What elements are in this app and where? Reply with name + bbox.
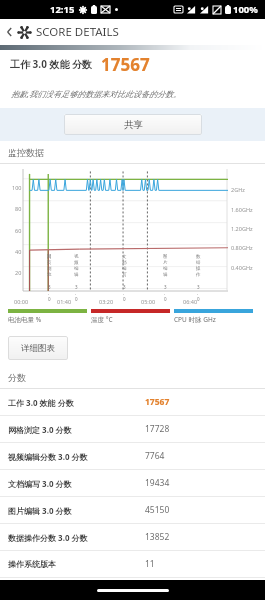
button[interactable]: 工作 3.0 效能 分数 bbox=[0, 389, 265, 416]
staticText: 温度 °C bbox=[91, 315, 113, 324]
staticText: 12:15 bbox=[50, 3, 75, 16]
staticText: 浏 bbox=[47, 266, 52, 272]
staticText: 3 bbox=[75, 284, 78, 290]
staticText: 03:20 bbox=[99, 298, 114, 305]
staticText: 电池电量 % bbox=[8, 315, 42, 324]
staticText: 视频编辑分数 3.0 分数 bbox=[8, 451, 88, 462]
staticText: . bbox=[75, 290, 77, 296]
staticText: 数据操作分数 3.0 分数 bbox=[8, 532, 88, 543]
staticText: 编 bbox=[74, 266, 79, 272]
staticText: 3 bbox=[164, 284, 167, 290]
staticText: 40 bbox=[15, 248, 22, 255]
staticText: 抱歉,我们没有足够的数据来对比此设备的分数。 bbox=[11, 88, 182, 99]
staticText: . bbox=[48, 290, 50, 296]
staticText: 3 bbox=[48, 284, 51, 290]
staticText: 100% bbox=[233, 3, 258, 16]
staticText bbox=[48, 278, 50, 284]
staticText: 数 bbox=[196, 254, 201, 260]
staticText: 0 bbox=[48, 296, 51, 302]
staticText: CPU 时脉 GHz bbox=[174, 315, 216, 324]
button[interactable]: 操作系统版本 bbox=[0, 551, 265, 578]
button[interactable]: Back bbox=[3, 25, 17, 39]
staticText: 编 bbox=[163, 266, 168, 272]
staticText: SCORE DETAILS bbox=[36, 24, 119, 40]
button[interactable]: Home bbox=[97, 589, 169, 592]
button[interactable]: 详细图表 bbox=[8, 336, 68, 360]
button[interactable]: 图片编辑 3.0 分数 bbox=[0, 497, 265, 524]
staticText: 图片编辑 3.0 分数 bbox=[8, 505, 72, 516]
staticText: 7764 bbox=[145, 450, 165, 462]
staticText: 0 bbox=[75, 296, 78, 302]
staticText: 0 bbox=[197, 296, 200, 302]
staticText: 编 bbox=[122, 266, 127, 272]
staticText: 1.60GHz bbox=[231, 206, 253, 213]
staticText: 页 bbox=[47, 260, 52, 266]
staticText: 网 bbox=[47, 254, 52, 260]
button[interactable]: 网格浏定 3.0 分数 bbox=[0, 416, 265, 443]
staticText: 06:40 bbox=[183, 298, 198, 305]
staticText: 13852 bbox=[145, 531, 170, 543]
staticText: 17728 bbox=[145, 423, 170, 435]
staticText: 片 bbox=[163, 260, 168, 266]
staticText: 辑 bbox=[163, 272, 168, 278]
staticText: 3 bbox=[197, 284, 200, 290]
staticText: 网格浏定 3.0 分数 bbox=[8, 424, 72, 435]
staticText: 1.20GHz bbox=[231, 225, 253, 232]
staticText: 据 bbox=[196, 260, 201, 266]
staticText: 操作系统版本 bbox=[8, 559, 56, 569]
staticText: 文档编写 3.0 分数 bbox=[8, 478, 72, 489]
staticText: 2GHz bbox=[231, 186, 245, 193]
staticText: 0.40GHz bbox=[231, 264, 253, 271]
staticText: 60 bbox=[15, 227, 22, 234]
staticText: 05:00 bbox=[141, 298, 156, 305]
staticText: . bbox=[164, 290, 166, 296]
staticText: 17567 bbox=[145, 396, 170, 408]
staticText: 作 bbox=[196, 272, 201, 278]
staticText: 0.80GHz bbox=[231, 244, 253, 251]
staticText: 45150 bbox=[145, 504, 170, 516]
button[interactable]: 文档编写 3.0 分数 bbox=[0, 470, 265, 497]
staticText: 20 bbox=[15, 269, 22, 276]
staticText: 17567 bbox=[101, 53, 150, 76]
staticText: 档 bbox=[122, 260, 127, 266]
staticText: 共享 bbox=[124, 119, 143, 131]
staticText: 0 bbox=[123, 296, 126, 302]
staticText: 分数 bbox=[8, 372, 26, 383]
staticText: . bbox=[123, 290, 125, 296]
staticText: . bbox=[197, 290, 199, 296]
staticText: 00:00 bbox=[14, 298, 29, 305]
staticText: 19434 bbox=[145, 477, 170, 489]
staticText: 写 bbox=[122, 272, 127, 278]
button[interactable]: 视频编辑分数 3.0 分数 bbox=[0, 443, 265, 470]
button[interactable]: 数据操作分数 3.0 分数 bbox=[0, 524, 265, 551]
staticText: 工作 3.0 效能 分数 bbox=[10, 57, 93, 71]
staticText: 0 bbox=[164, 296, 167, 302]
staticText: 80 bbox=[15, 205, 22, 212]
staticText: 监控数据 bbox=[8, 147, 44, 158]
staticText: 100 bbox=[12, 184, 22, 191]
staticText: 3 bbox=[123, 284, 126, 290]
staticText: 览 bbox=[47, 272, 52, 278]
button[interactable]: 共享 bbox=[64, 114, 202, 135]
staticText bbox=[123, 278, 125, 284]
staticText: 操 bbox=[196, 266, 201, 272]
staticText: 01:40 bbox=[57, 298, 72, 305]
staticText: 图 bbox=[163, 254, 168, 260]
staticText: 工作 3.0 效能 分数 bbox=[8, 397, 74, 408]
staticText: 视 bbox=[74, 254, 79, 260]
staticText: 辑 bbox=[74, 272, 79, 278]
staticText: 文 bbox=[122, 254, 127, 260]
staticText: 详细图表 bbox=[21, 343, 55, 354]
staticText: 11 bbox=[145, 558, 155, 570]
staticText: 频 bbox=[74, 260, 79, 266]
